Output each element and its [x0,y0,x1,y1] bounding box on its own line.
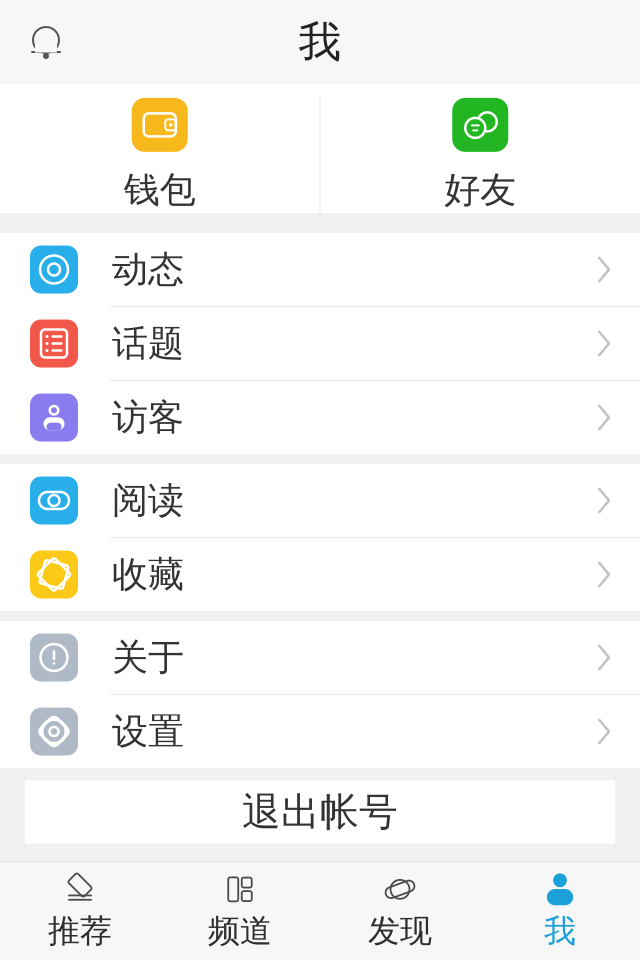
button[interactable]: 钱包 [0,78,319,232]
button[interactable]: 频道 [160,862,320,960]
staticText: 发现 [368,911,432,951]
button[interactable]: 访客 [0,381,640,454]
button[interactable]: 我 [480,862,640,960]
button[interactable]: 动态 [0,233,640,307]
staticText: 推荐 [48,911,112,951]
staticText: 好友 [444,168,516,212]
button[interactable]: 发现 [320,862,480,960]
staticText: 设置 [112,709,184,754]
staticText: 访客 [112,395,184,440]
button[interactable]: Notifications [0,14,76,70]
button[interactable]: 推荐 [0,862,160,960]
staticText: 话题 [112,321,184,366]
staticText: 阅读 [112,478,184,523]
button[interactable]: 话题 [0,307,640,381]
staticText: 收藏 [112,552,184,597]
staticText: 退出帐号 [242,788,398,836]
staticText: 我 [544,911,576,951]
staticText: 频道 [208,911,272,951]
button[interactable]: 设置 [0,695,640,768]
button[interactable]: 关于 [0,621,640,695]
staticText: 动态 [112,247,184,292]
staticText: 钱包 [124,168,196,212]
button[interactable]: 好友 [320,78,640,232]
button[interactable]: 阅读 [0,464,640,538]
button[interactable]: 退出帐号 [0,780,640,843]
button[interactable]: 收藏 [0,538,640,611]
staticText: 我 [298,16,341,68]
staticText: 关于 [112,635,184,680]
